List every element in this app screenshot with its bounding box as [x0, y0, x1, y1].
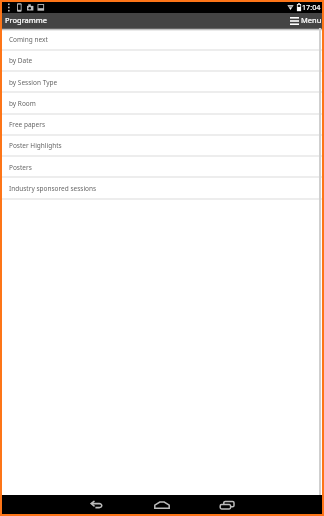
staticText: Free papers — [9, 120, 46, 129]
button[interactable]: Coming next — [2, 29, 322, 49]
staticText: Menu — [301, 15, 322, 25]
button[interactable]: Poster Highlights — [2, 135, 322, 155]
staticText: by Date — [9, 56, 33, 65]
button[interactable]: Free papers — [2, 114, 322, 134]
button[interactable]: Recent apps — [209, 496, 245, 514]
staticText: Poster Highlights — [9, 141, 62, 150]
staticText: by Session Type — [9, 78, 58, 87]
staticText: Programme — [5, 15, 48, 25]
staticText: by Room — [9, 99, 36, 108]
button[interactable]: by Session Type — [2, 72, 322, 92]
button[interactable]: Menu — [286, 13, 322, 28]
button[interactable]: by Room — [2, 93, 322, 113]
staticText: Coming next — [9, 35, 48, 44]
button[interactable]: Industry sponsored sessions — [2, 178, 322, 198]
button[interactable]: Home — [144, 496, 180, 514]
staticText: Posters — [9, 163, 32, 172]
button[interactable]: Back — [79, 496, 115, 514]
staticText: Industry sponsored sessions — [9, 184, 97, 193]
staticText: 17:04 — [302, 2, 321, 12]
button[interactable]: Posters — [2, 157, 322, 177]
button[interactable]: by Date — [2, 50, 322, 70]
